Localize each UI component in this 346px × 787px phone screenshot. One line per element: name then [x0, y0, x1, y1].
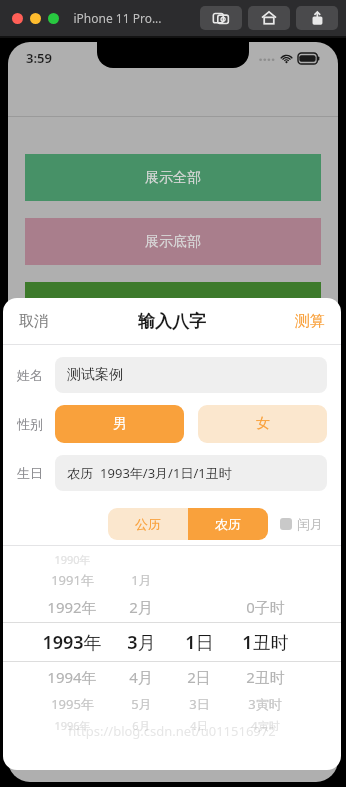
- staticText: 闰月: [297, 516, 323, 532]
- staticText: 展示底部: [145, 233, 201, 251]
- staticText: 男: [113, 415, 127, 433]
- button[interactable]: 指定信息: [25, 282, 321, 329]
- staticText: 1992年: [47, 597, 97, 617]
- staticText: 1991年: [51, 571, 94, 589]
- button[interactable]: 展示全部: [25, 154, 321, 201]
- staticText: 1990年: [54, 552, 91, 567]
- staticText: 2月: [129, 597, 153, 617]
- staticText: 3:59: [26, 49, 52, 67]
- staticText: 3寅时: [248, 695, 282, 713]
- button[interactable]: 公历: [108, 508, 188, 540]
- button[interactable]: 测算: [279, 302, 341, 341]
- button[interactable]: Home: [248, 6, 290, 30]
- staticText: 6月: [132, 718, 150, 733]
- staticText: 4寅时: [251, 718, 280, 733]
- button[interactable]: Share: [296, 6, 338, 30]
- staticText: 公历: [135, 516, 161, 532]
- staticText: 1日: [185, 630, 214, 655]
- staticText: 0子时: [246, 597, 285, 617]
- staticText: 农历: [215, 516, 241, 532]
- staticText: 指定信息: [145, 297, 201, 315]
- button[interactable]: 闰月: [280, 516, 323, 532]
- button[interactable]: 取消: [3, 302, 65, 341]
- button[interactable]: 男: [55, 405, 184, 443]
- staticText: 5月: [131, 695, 152, 713]
- staticText: 1月: [131, 571, 152, 589]
- staticText: 1995年: [51, 695, 94, 713]
- staticText: 1996年: [54, 718, 91, 733]
- button[interactable]: 女: [198, 405, 327, 443]
- staticText: iPhone 11 Pro...: [73, 10, 162, 26]
- button[interactable]: 农历 1993年/3月/1日/1丑时: [55, 455, 327, 491]
- staticText: 4日: [190, 718, 208, 733]
- staticText: 取消: [19, 312, 49, 331]
- staticText: 3日: [189, 695, 210, 713]
- button[interactable]: 1990年: [3, 546, 341, 746]
- staticText: https://blog.csdn.net/u011516972: [68, 722, 276, 740]
- button[interactable]: Screenshot: [200, 6, 242, 30]
- button[interactable]: 测试案例: [55, 357, 327, 393]
- staticText: 输入八字: [138, 311, 206, 332]
- button[interactable]: 农历: [188, 508, 268, 540]
- staticText: 生日: [17, 465, 43, 481]
- staticText: 2日: [187, 667, 211, 687]
- staticText: 1丑时: [242, 630, 289, 655]
- staticText: 4月: [129, 667, 153, 687]
- staticText: 2丑时: [246, 667, 285, 687]
- staticText: 女: [256, 415, 270, 433]
- staticText: 3月: [127, 630, 156, 655]
- staticText: 测试案例: [67, 366, 123, 384]
- staticText: 1993年: [42, 630, 102, 655]
- staticText: 农历 1993年/3月/1日/1丑时: [67, 464, 232, 482]
- staticText: 性别: [17, 416, 43, 432]
- staticText: 姓名: [17, 367, 43, 383]
- button[interactable]: 展示底部: [25, 218, 321, 265]
- staticText: 展示全部: [145, 169, 201, 187]
- staticText: 1994年: [47, 667, 97, 687]
- staticText: 测算: [295, 312, 325, 331]
